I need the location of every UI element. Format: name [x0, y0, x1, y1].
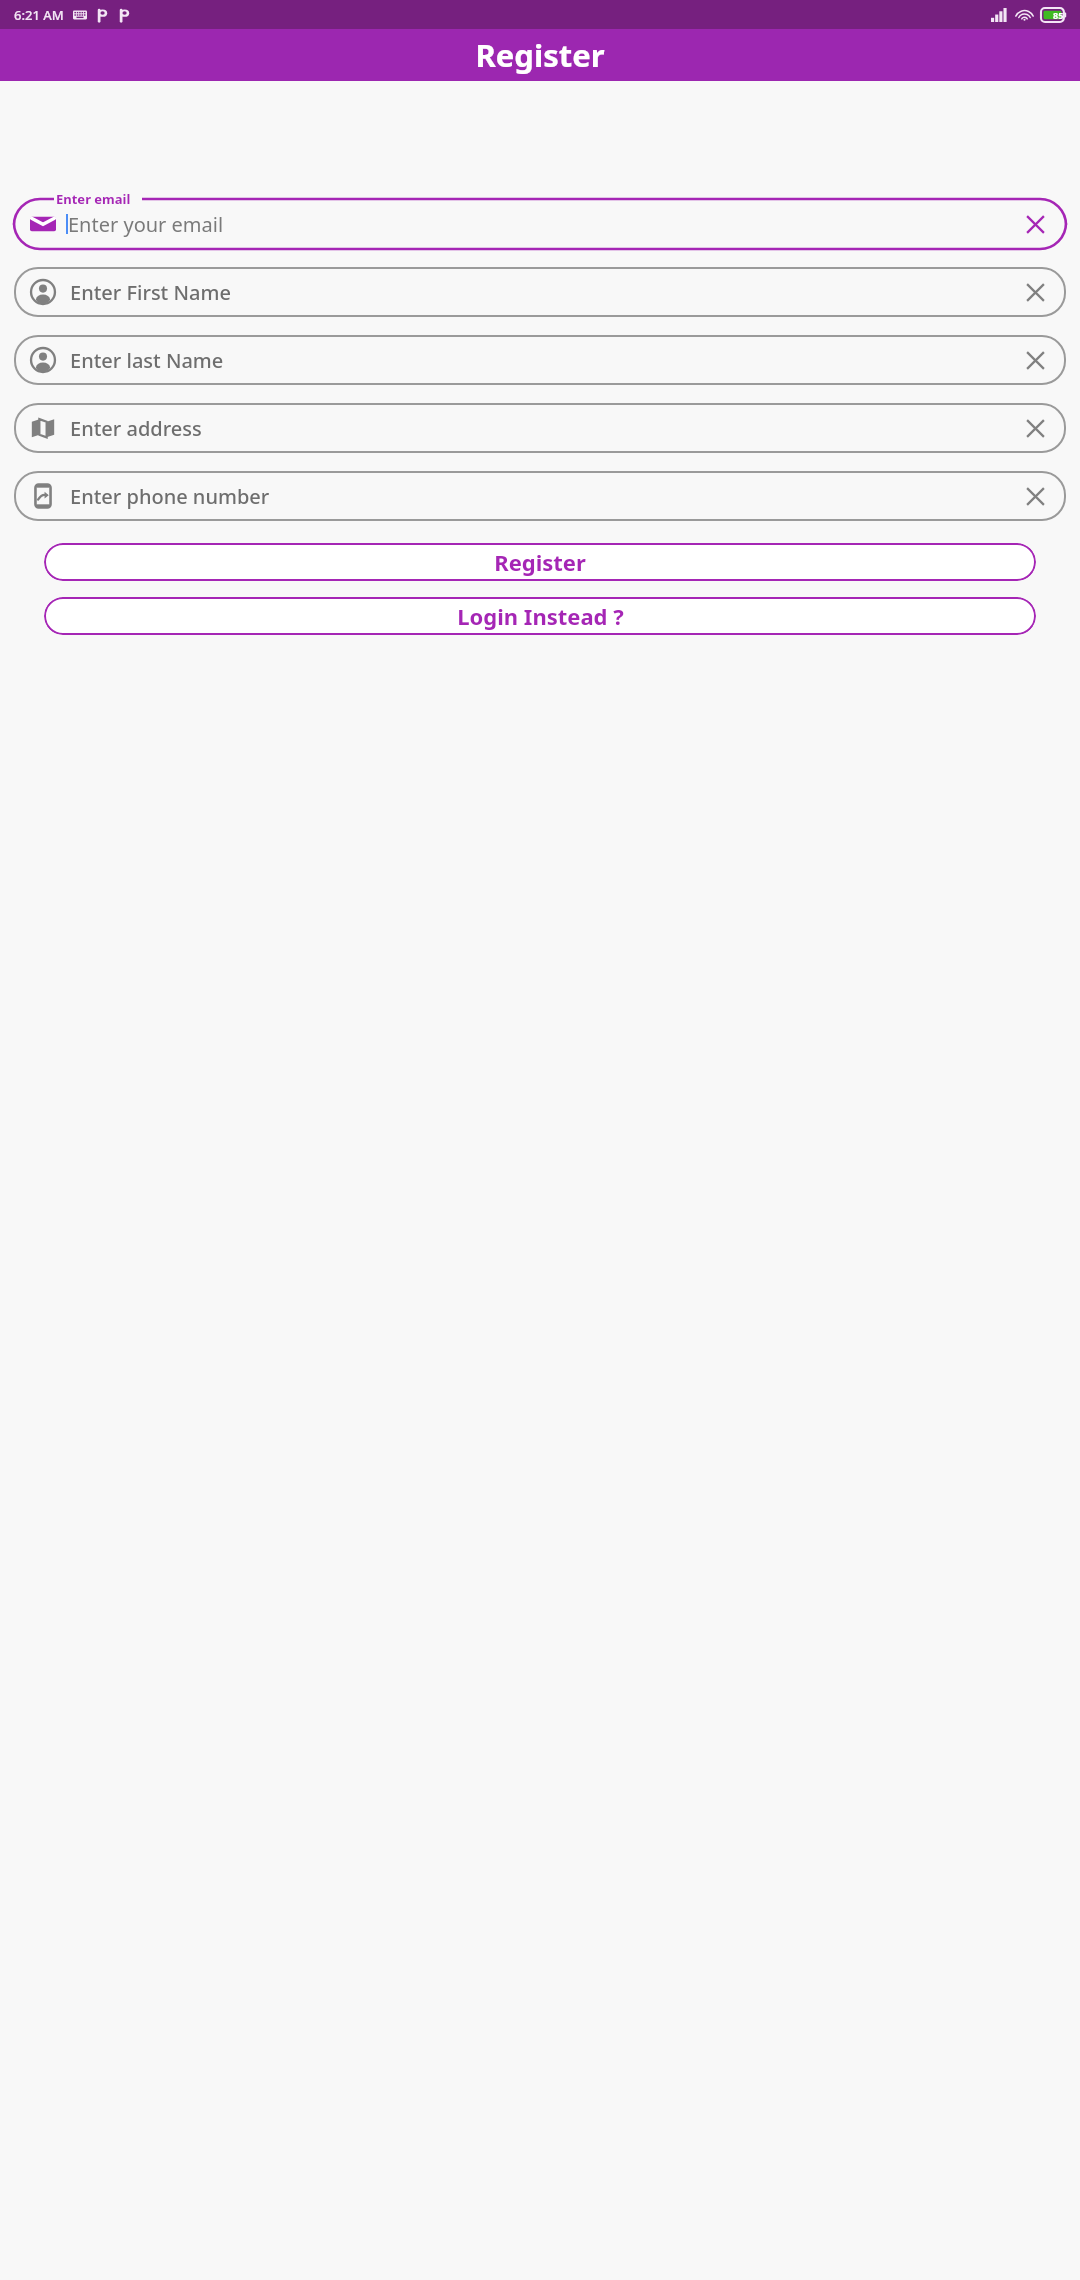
- staticText: 6:21 AM: [14, 6, 64, 24]
- staticText: Enter last Name: [70, 347, 224, 374]
- button[interactable]: Enter phone number: [14, 471, 1066, 521]
- button[interactable]: Register: [44, 543, 1036, 581]
- button[interactable]: Login Instead ?: [44, 597, 1036, 635]
- button[interactable]: Enter last Name: [14, 335, 1066, 385]
- button[interactable]: Clear Enter First Name: [1020, 277, 1050, 307]
- staticText: Register: [475, 34, 605, 76]
- button[interactable]: Enter address: [14, 403, 1066, 453]
- button[interactable]: Clear Enter phone number: [1020, 481, 1050, 511]
- staticText: Enter email: [56, 190, 131, 208]
- button[interactable]: Enter First Name: [14, 267, 1066, 317]
- staticText: Enter First Name: [70, 279, 231, 306]
- button[interactable]: Clear Enter address: [1020, 413, 1050, 443]
- button[interactable]: Clear Enter last Name: [1020, 345, 1050, 375]
- button[interactable]: Clear email: [1020, 209, 1050, 239]
- staticText: Enter phone number: [70, 483, 270, 510]
- staticText: Enter your email: [68, 211, 224, 238]
- staticText: Login Instead ?: [457, 601, 624, 631]
- staticText: Register: [494, 547, 586, 577]
- staticText: 85: [1053, 9, 1064, 21]
- staticText: Enter address: [70, 415, 202, 442]
